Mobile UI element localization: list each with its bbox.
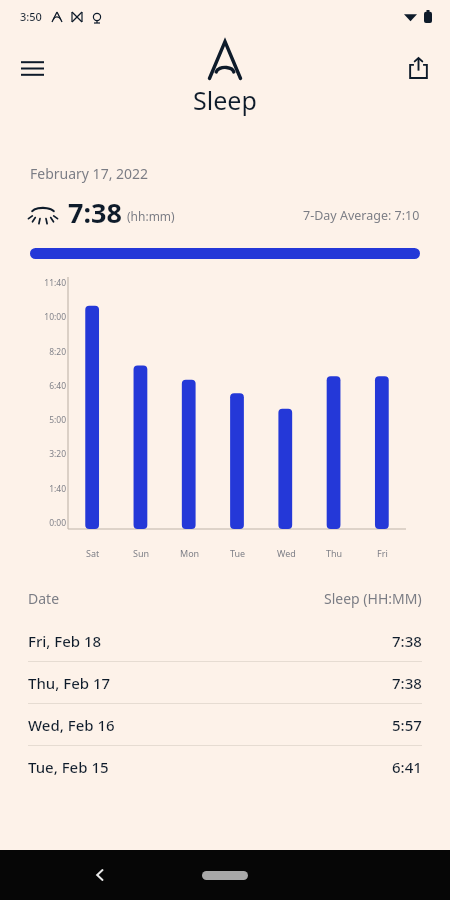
staticText: Fri [377, 547, 388, 559]
staticText: February 17, 2022 [30, 164, 149, 183]
staticText: Sat [86, 547, 100, 559]
staticText: Sleep [193, 83, 257, 117]
staticText: Sleep (HH:MM) [324, 589, 422, 608]
staticText: Thu, Feb 17 [28, 673, 111, 693]
staticText: Fri, Feb 18 [28, 631, 102, 651]
staticText: 5:57 [392, 715, 422, 735]
staticText: Thu [326, 547, 343, 559]
staticText: Wed [277, 547, 296, 559]
staticText: 7:38 [392, 673, 422, 693]
staticText: 11:40 [44, 277, 66, 289]
staticText: 6:40 [49, 380, 66, 392]
staticText: Tue, Feb 15 [28, 757, 109, 777]
button[interactable]: Home [190, 860, 260, 890]
staticText: Sun [133, 547, 150, 559]
staticText: Date [28, 589, 60, 608]
staticText: 8:20 [49, 346, 66, 358]
staticText: (hh:mm) [127, 208, 175, 224]
staticText: 5:00 [49, 414, 66, 426]
staticText: Tue [230, 547, 246, 559]
staticText: 7:38 [68, 194, 122, 231]
button[interactable]: Thu, Feb 17 [28, 662, 422, 703]
button[interactable]: Back [80, 855, 120, 895]
staticText: 3:50 [20, 9, 42, 24]
staticText: Wed, Feb 16 [28, 715, 115, 735]
staticText: 6:41 [392, 757, 422, 777]
button[interactable]: Wed, Feb 16 [28, 704, 422, 745]
staticText: 0:00 [49, 517, 66, 529]
button[interactable]: Tue, Feb 15 [28, 746, 422, 787]
staticText: 3:20 [49, 448, 66, 460]
staticText: 10:00 [44, 311, 66, 323]
staticText: 7:38 [392, 631, 422, 651]
button[interactable]: Menu [10, 46, 54, 90]
staticText: 1:40 [49, 483, 66, 495]
staticText: Mon [180, 547, 200, 559]
button[interactable]: Fri, Feb 18 [28, 620, 422, 661]
staticText: 7-Day Average: 7:10 [303, 207, 420, 224]
button[interactable]: Share [396, 46, 440, 90]
